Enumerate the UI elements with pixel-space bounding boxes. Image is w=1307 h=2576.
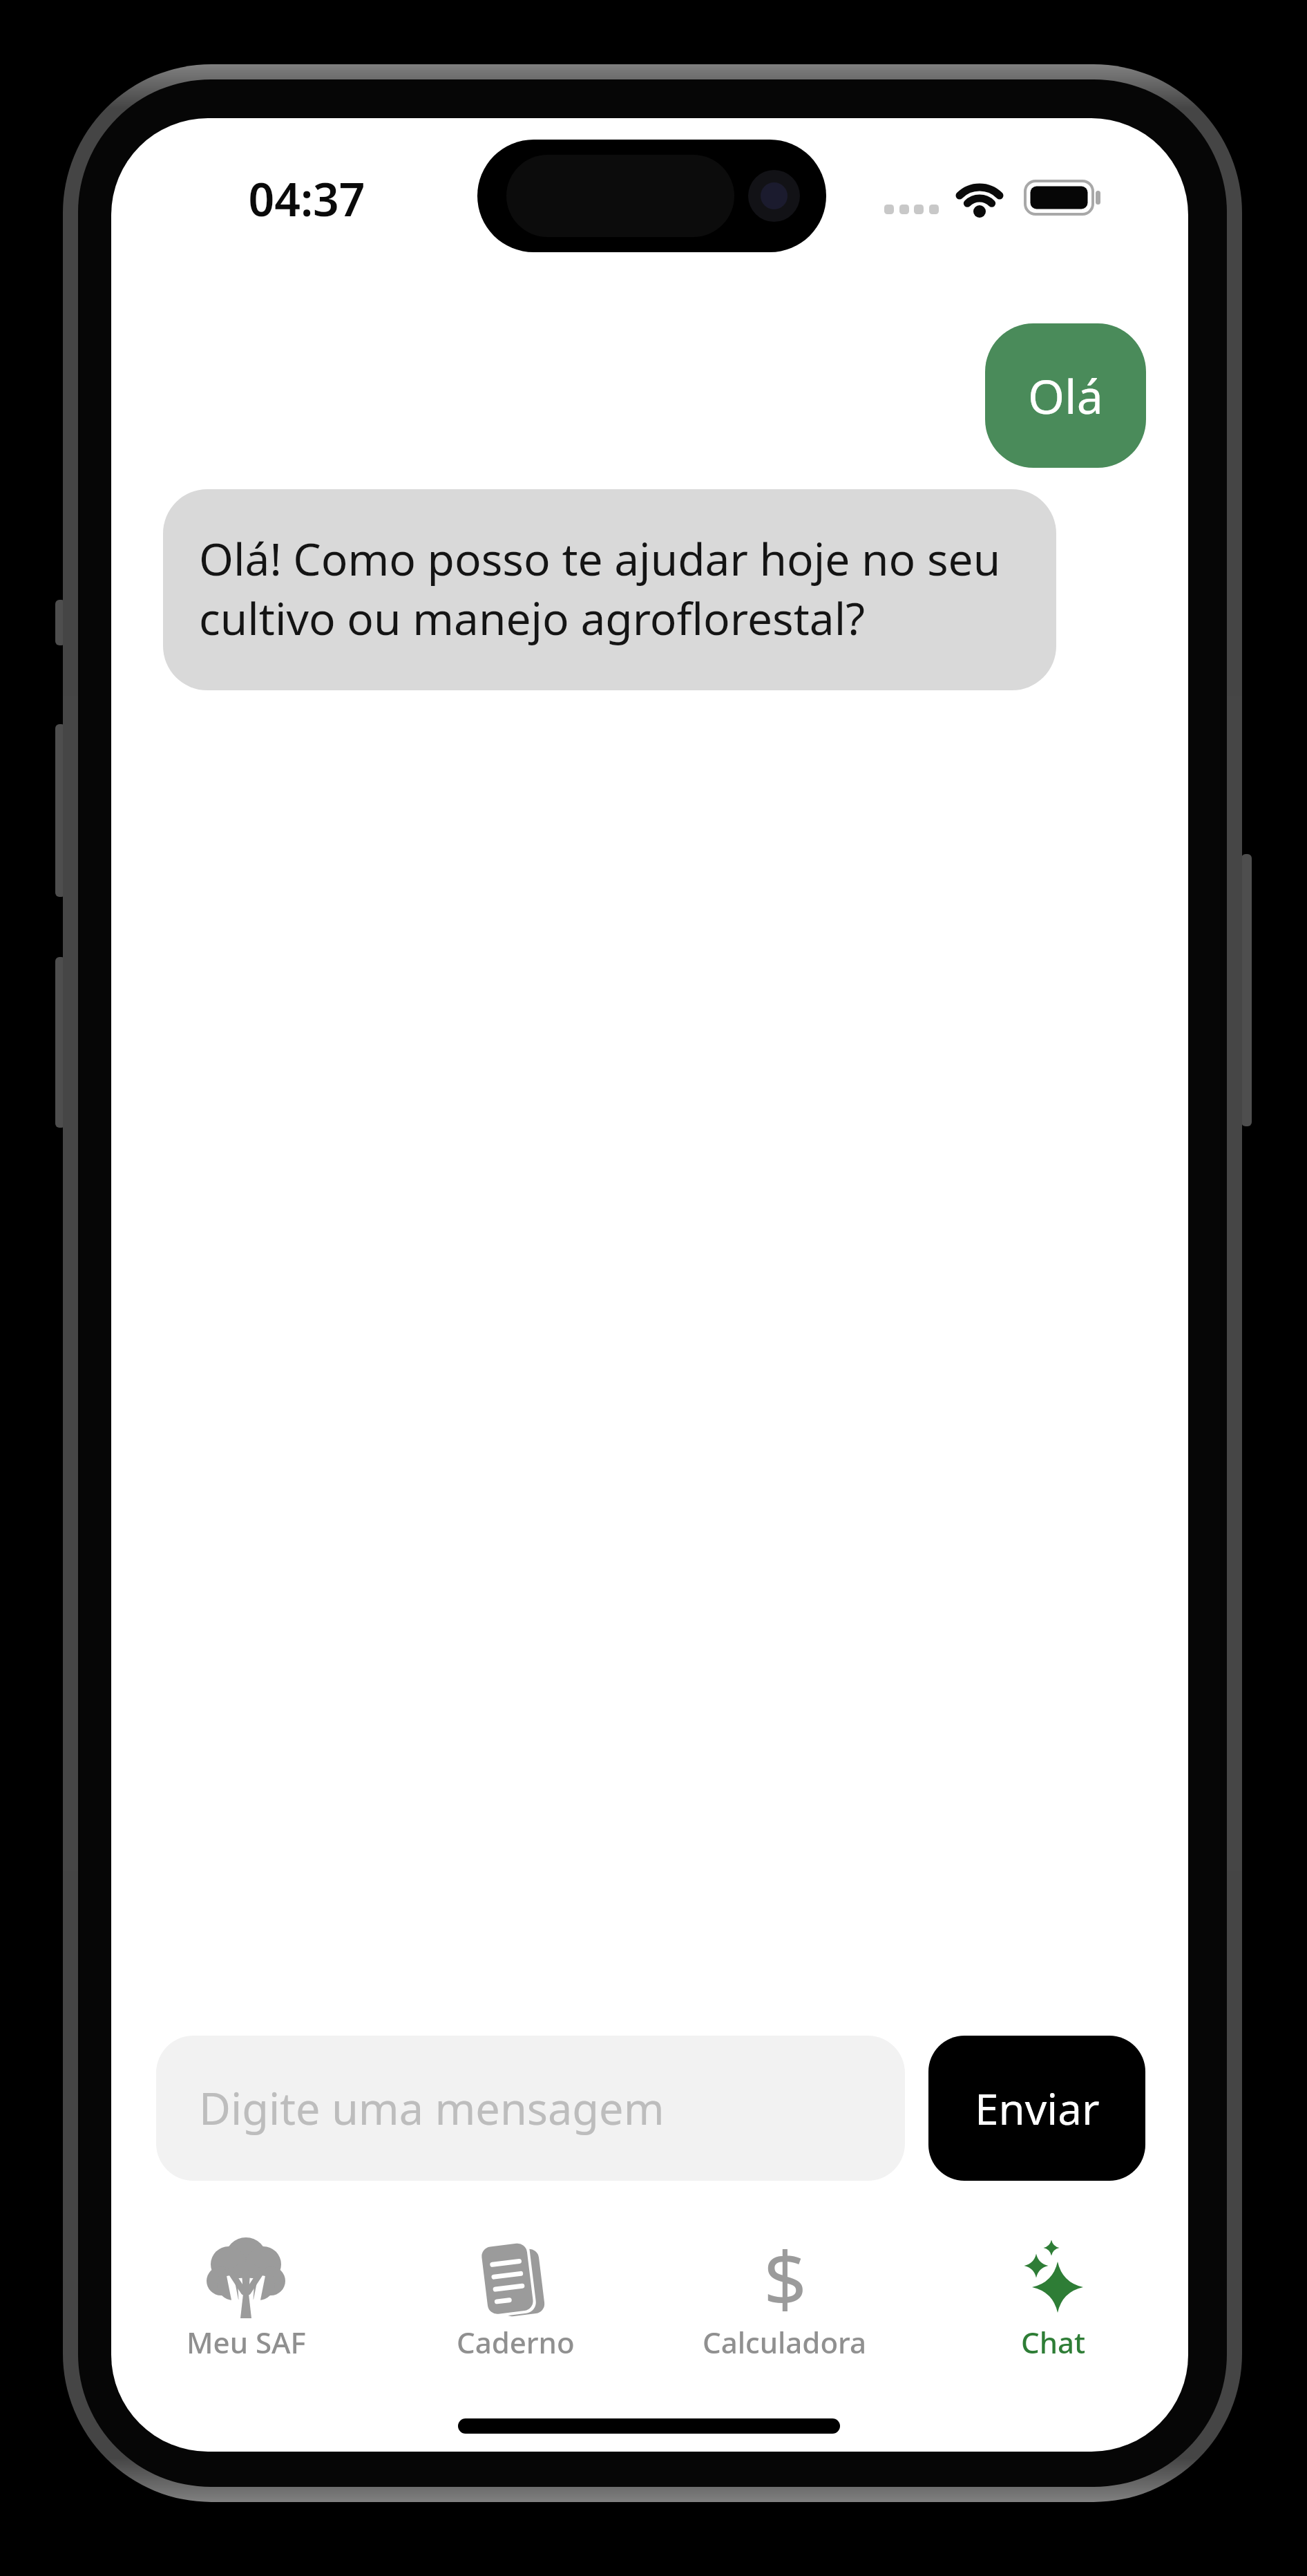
staticText: Digite uma mensagem [199, 2078, 665, 2138]
staticText: Enviar [975, 2079, 1100, 2137]
button[interactable]: Chat [919, 2215, 1188, 2374]
staticText: Meu SAF [187, 2322, 306, 2362]
staticText: Chat [1021, 2322, 1086, 2362]
button[interactable]: Meu SAF [111, 2215, 381, 2374]
staticText: $ [763, 2225, 807, 2329]
staticText: Olá [1028, 363, 1103, 428]
button[interactable]: $ [650, 2215, 919, 2374]
staticText: Olá! Como posso te ajudar hoje no seu cu… [199, 529, 1001, 648]
staticText: 04:37 [230, 167, 383, 227]
staticText: Caderno [457, 2322, 575, 2362]
button[interactable]: Digite uma mensagem [156, 2036, 905, 2181]
button[interactable]: Caderno [381, 2215, 650, 2374]
staticText: Calculadora [703, 2322, 867, 2362]
button[interactable]: Enviar [928, 2036, 1145, 2181]
